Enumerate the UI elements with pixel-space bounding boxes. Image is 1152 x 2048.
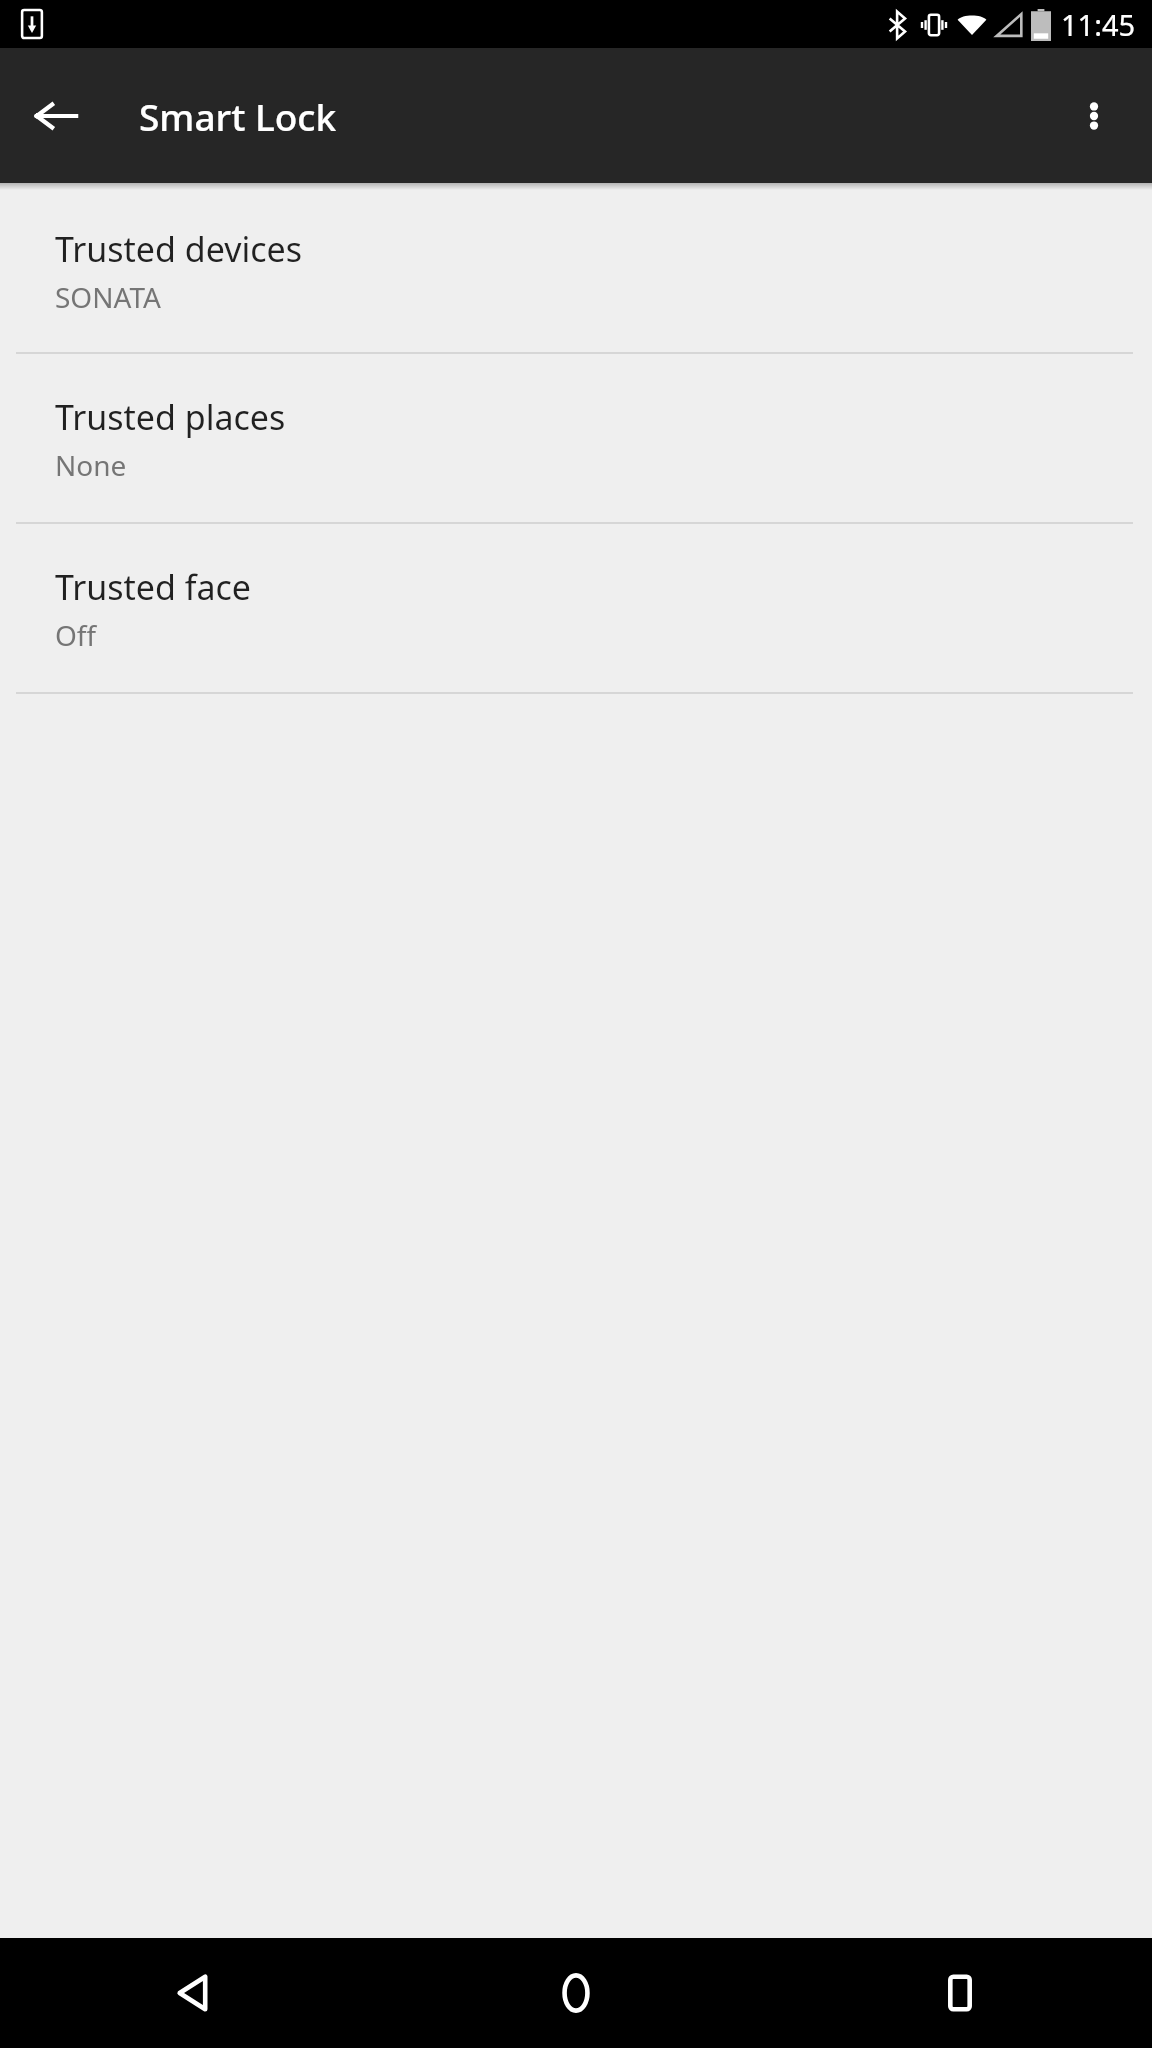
- button[interactable]: Trusted face: [0, 524, 1152, 692]
- button[interactable]: More options: [1058, 80, 1130, 152]
- staticText: Smart Lock: [139, 91, 337, 141]
- button[interactable]: Trusted devices: [0, 190, 1152, 352]
- button[interactable]: Trusted places: [0, 354, 1152, 522]
- staticText: Off: [55, 616, 97, 654]
- staticText: Trusted face: [55, 564, 252, 610]
- button[interactable]: Back: [137, 1938, 247, 2048]
- button[interactable]: Recent apps: [905, 1938, 1015, 2048]
- staticText: Trusted devices: [55, 226, 302, 272]
- staticText: SONATA: [55, 278, 161, 316]
- staticText: None: [55, 446, 127, 484]
- button[interactable]: Home: [521, 1938, 631, 2048]
- staticText: Trusted places: [55, 394, 286, 440]
- button[interactable]: Navigate up: [20, 80, 92, 152]
- staticText: 11:45: [1061, 5, 1136, 44]
